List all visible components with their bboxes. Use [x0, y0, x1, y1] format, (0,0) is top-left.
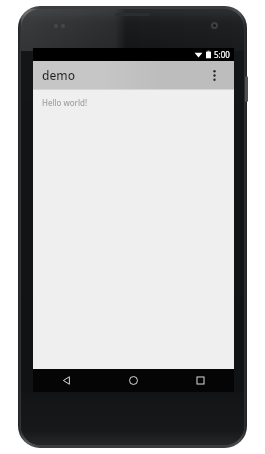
- button[interactable]: Back: [33, 369, 100, 392]
- staticText: demo: [42, 67, 76, 83]
- staticText: Hello world!: [42, 97, 88, 108]
- button[interactable]: More options: [203, 64, 225, 86]
- button[interactable]: Home: [100, 369, 167, 392]
- staticText: 5:00: [214, 49, 230, 60]
- button[interactable]: Recent apps: [167, 369, 234, 392]
